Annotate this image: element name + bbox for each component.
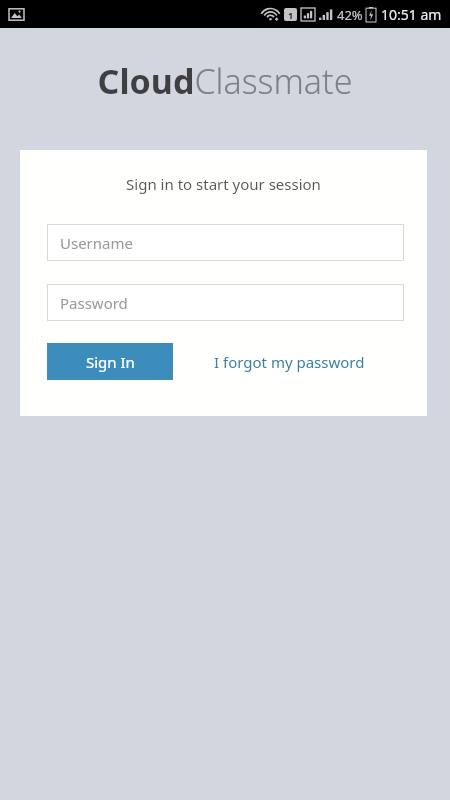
staticText: Username — [60, 233, 133, 253]
staticText: 42% — [337, 6, 363, 24]
button[interactable]: I forgot my password — [174, 343, 404, 380]
button[interactable]: Username — [47, 224, 404, 261]
staticText: 1 — [288, 9, 294, 21]
staticText: I forgot my password — [214, 352, 365, 372]
button[interactable]: Password — [47, 284, 404, 321]
button[interactable]: Sign In — [47, 343, 173, 380]
staticText: Sign in to start your session — [20, 174, 427, 194]
staticText: Sign In — [86, 352, 135, 372]
staticText: CloudClassmate — [0, 58, 450, 104]
staticText: 10:51 am — [381, 5, 442, 24]
staticText: Password — [60, 293, 128, 313]
